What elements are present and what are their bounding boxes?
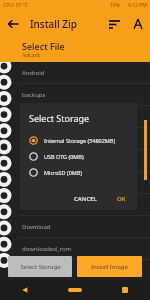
button[interactable]	[0, 194, 150, 216]
button[interactable]: More options	[126, 12, 150, 36]
button[interactable]: Install Image	[77, 256, 142, 277]
staticText: Select Storage	[20, 263, 61, 271]
button[interactable]: USB OTG (0MB)	[29, 148, 131, 164]
button[interactable]: MicroSD (0MB)	[29, 164, 131, 180]
button[interactable]: Android	[0, 62, 150, 84]
button[interactable]: Download	[0, 216, 150, 238]
staticText: Android	[22, 69, 45, 77]
button[interactable]: Back	[0, 11, 26, 37]
staticText: Download	[22, 223, 51, 231]
button[interactable]	[0, 172, 150, 194]
button[interactable]: Home	[50, 280, 100, 300]
staticText: MicroSD (0MB)	[44, 169, 83, 176]
staticText: CPU: 37 °C	[3, 2, 28, 9]
button[interactable]	[0, 150, 150, 172]
button[interactable]: Internal Storage (34802MB)	[29, 132, 131, 148]
staticText: backups	[22, 91, 46, 99]
staticText: Install Image	[91, 263, 128, 271]
staticText: Install Zip	[30, 17, 77, 31]
button[interactable]: Sort	[102, 12, 126, 36]
button[interactable]	[0, 128, 150, 150]
staticText: Select Storage	[29, 112, 90, 124]
button[interactable]: Recents	[100, 280, 150, 300]
button[interactable]: OK	[112, 192, 131, 206]
staticText: /sdcard	[22, 52, 40, 59]
button[interactable]: backups	[0, 84, 150, 106]
staticText: 9:12 PM	[128, 2, 147, 9]
button[interactable]: downloaded_rom	[0, 238, 150, 260]
staticText: USB OTG (0MB)	[44, 153, 84, 160]
button[interactable]	[0, 106, 150, 128]
button[interactable]: Select Storage	[8, 256, 72, 277]
button[interactable]: CANCEL	[69, 192, 102, 206]
staticText: downloaded_rom	[22, 245, 72, 253]
staticText: Internal Storage (34802MB)	[44, 137, 116, 144]
staticText: Select File	[22, 40, 65, 52]
staticText: 19%	[110, 2, 120, 9]
button[interactable]: Back	[0, 280, 50, 300]
staticText: OK	[117, 195, 126, 203]
staticText: CANCEL	[74, 195, 97, 203]
